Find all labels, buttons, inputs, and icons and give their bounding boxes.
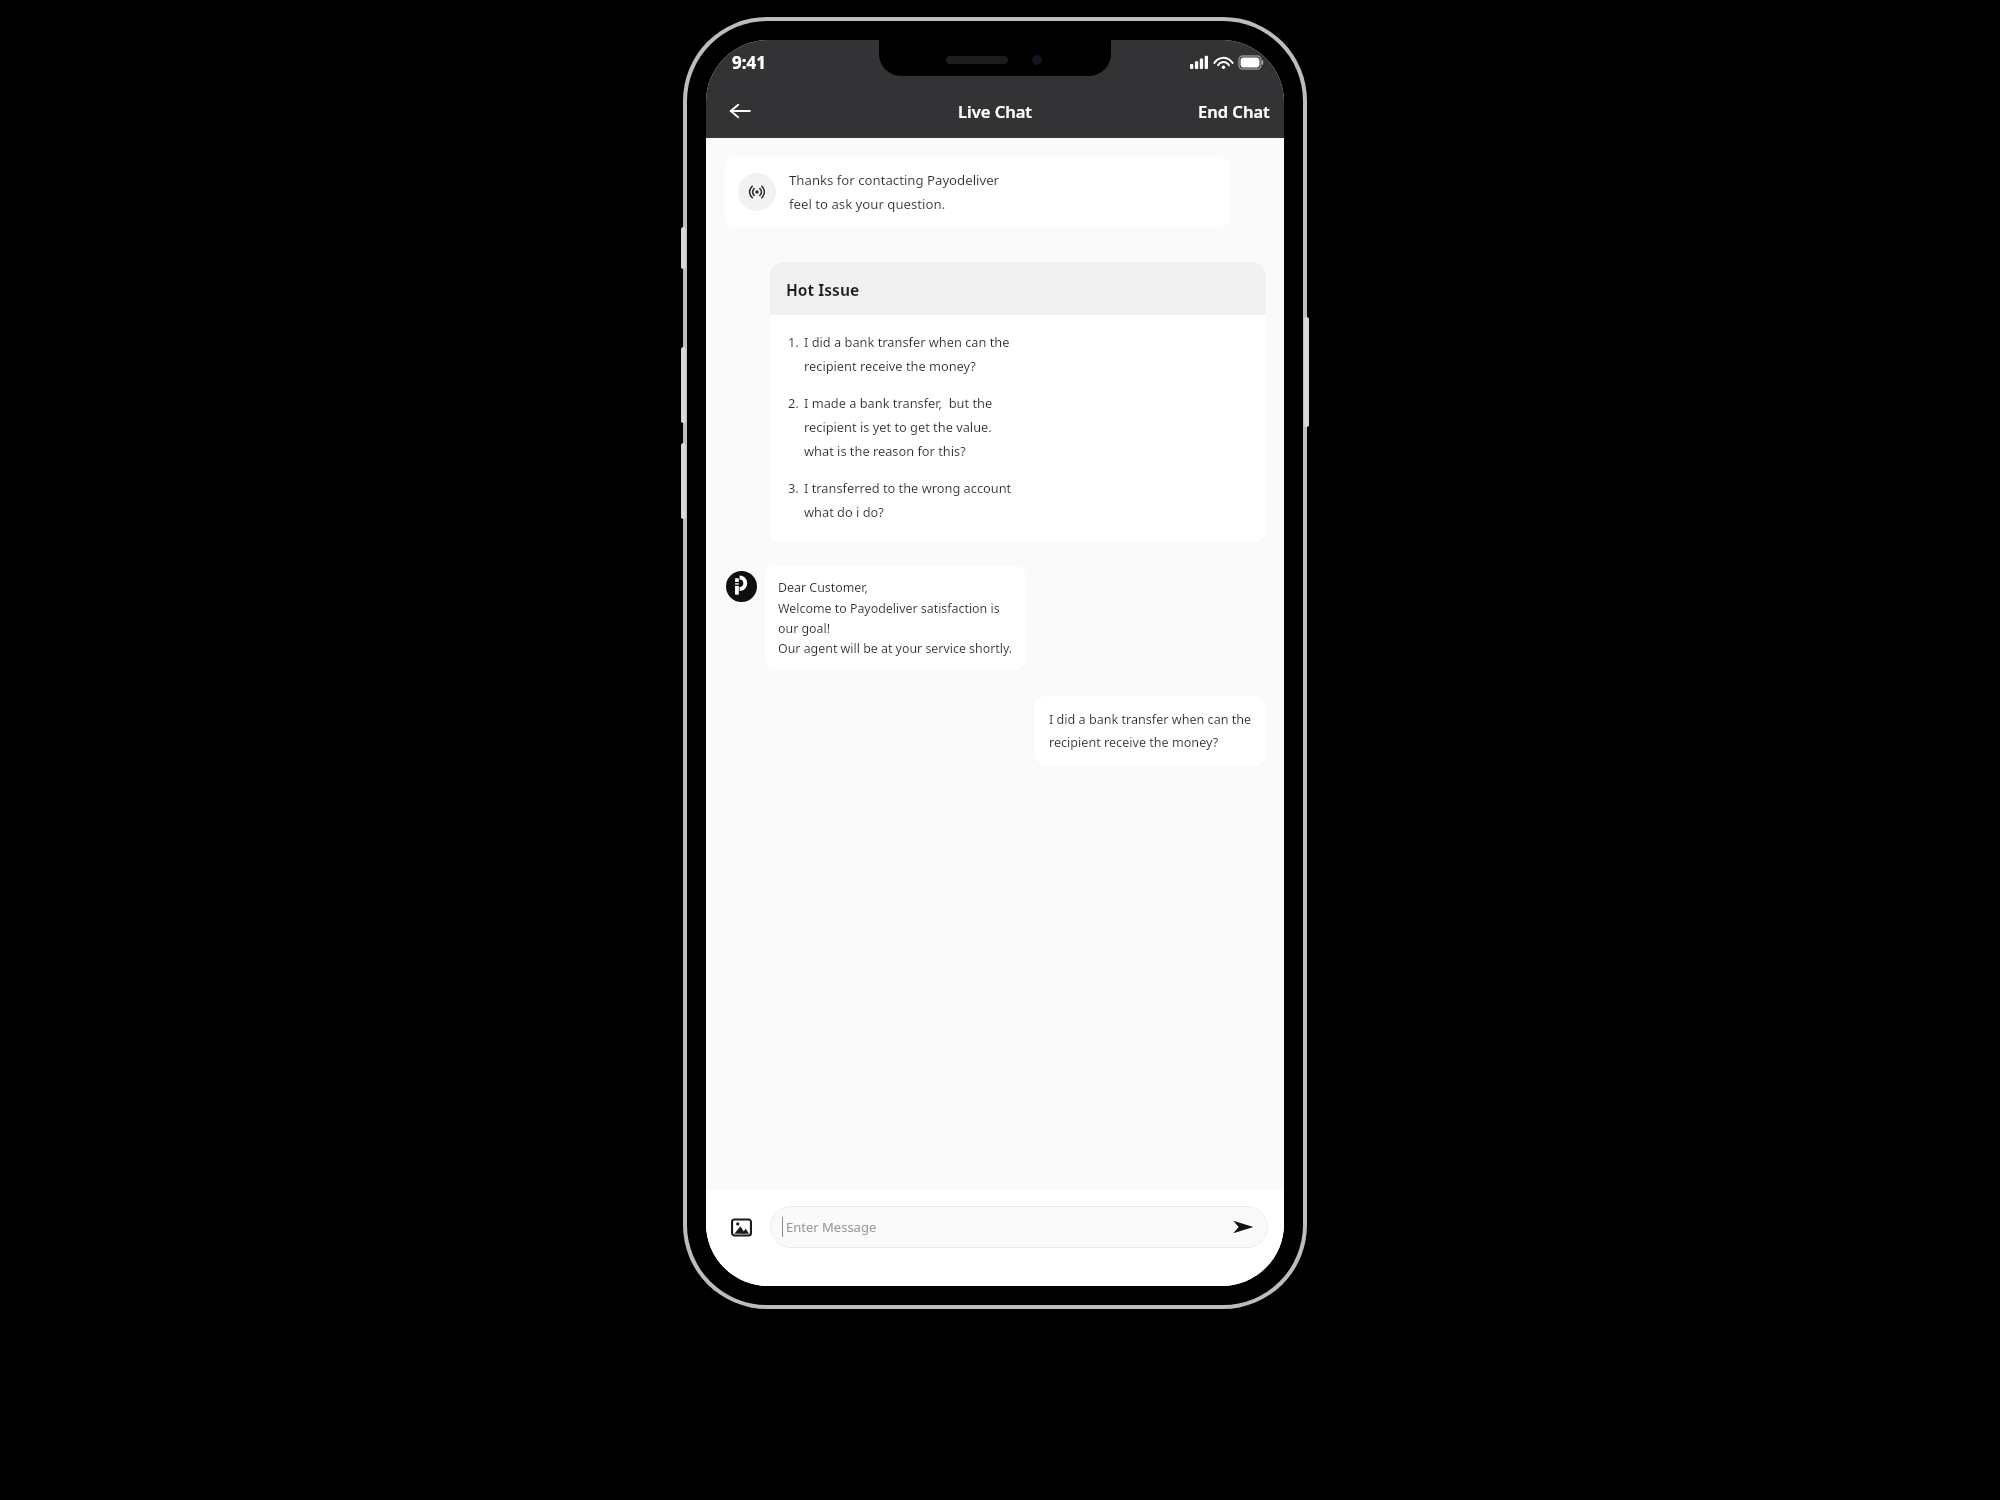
button[interactable]: End Chat xyxy=(1184,92,1284,130)
button[interactable]: 1. xyxy=(788,333,1254,375)
button[interactable]: Hot Issue xyxy=(770,262,1266,543)
staticText: 9:41 xyxy=(732,51,766,74)
staticText: End Chat xyxy=(1198,100,1270,122)
staticText: Hot Issue xyxy=(786,279,860,300)
button[interactable]: 3. xyxy=(788,479,1254,521)
button[interactable]: Back xyxy=(720,91,760,131)
staticText: 1. xyxy=(788,333,804,350)
staticText: I made a bank transfer, but the recipien… xyxy=(804,394,993,460)
staticText: 2. xyxy=(788,394,804,411)
staticText: Dear Customer, Welcome to Payodeliver sa… xyxy=(778,579,1013,656)
staticText: I transferred to the wrong account what … xyxy=(804,479,1012,521)
staticText: 3. xyxy=(788,479,804,496)
button[interactable]: 2. xyxy=(788,394,1254,460)
staticText: Enter Message xyxy=(786,1218,1228,1236)
button[interactable]: I did a bank transfer when can the recip… xyxy=(1035,696,1266,766)
staticText: I did a bank transfer when can the recip… xyxy=(1049,711,1252,751)
button[interactable]: Dear Customer, Welcome to Payodeliver sa… xyxy=(765,565,1026,670)
button[interactable]: Attach image xyxy=(722,1208,760,1246)
staticText: I did a bank transfer when can the recip… xyxy=(804,333,1010,375)
button[interactable]: Enter Message xyxy=(770,1206,1268,1248)
button[interactable]: Thanks for contacting Payodeliver feel t… xyxy=(724,156,1231,228)
button[interactable]: Send xyxy=(1228,1212,1258,1242)
staticText: Thanks for contacting Payodeliver feel t… xyxy=(789,171,1000,213)
staticText: Live Chat xyxy=(958,100,1033,122)
